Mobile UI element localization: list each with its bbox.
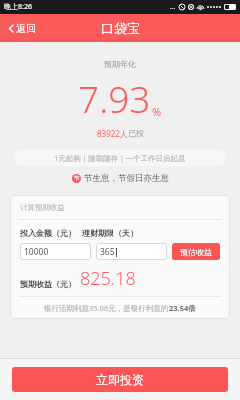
staticText: 预估收益 — [180, 247, 212, 257]
staticText: 825.18 — [80, 266, 136, 291]
staticText: 已投 — [128, 128, 144, 138]
button[interactable]: 立即投资 — [12, 367, 228, 392]
staticText: % — [152, 104, 162, 119]
staticText: 投入金额（元） — [20, 228, 76, 238]
button[interactable]: 1元起购｜随取随存｜一个工作日后起息 — [14, 149, 226, 166]
staticText: 口袋宝 — [101, 20, 140, 36]
staticText: 10000 — [24, 246, 49, 258]
staticText: 23.54倍 — [169, 303, 196, 313]
staticText: 返回 — [16, 22, 36, 35]
staticText: 83922人 — [97, 128, 128, 139]
staticText: 计算预期收益 — [20, 203, 65, 212]
staticText: 银行活期利息35.06元，是银行利息的 — [44, 303, 169, 313]
staticText: 1元起购｜随取随存｜一个工作日后起息 — [54, 153, 186, 163]
staticText: 立即投资 — [96, 372, 144, 387]
staticText: 节 — [74, 175, 80, 182]
button[interactable]: 预估收益 — [172, 243, 220, 260]
button[interactable]: 返回 — [6, 18, 38, 39]
staticText: 365 — [100, 246, 115, 258]
staticText: 节生息，节假日亦生息 — [84, 173, 169, 184]
button[interactable]: 365 — [96, 243, 167, 260]
button[interactable]: 10000 — [20, 243, 91, 260]
staticText: 预期收益（元） — [20, 279, 76, 289]
staticText: 预期年化 — [104, 59, 136, 69]
staticText: 7.93 — [78, 73, 151, 123]
staticText: 理财期限（天） — [82, 228, 138, 238]
staticText: 晚上8:26 — [4, 2, 32, 12]
staticText: … — [170, 2, 176, 12]
